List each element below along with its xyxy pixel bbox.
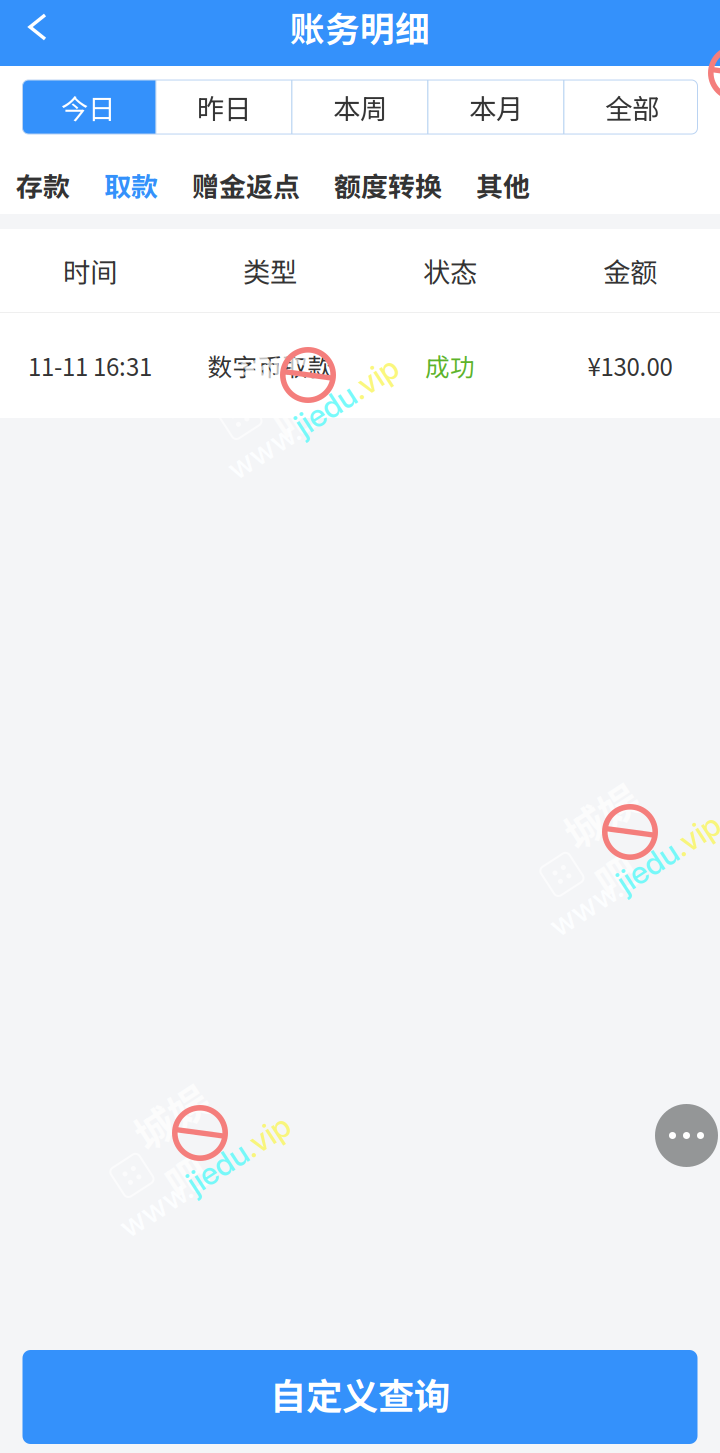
- staticText: 全部: [605, 87, 659, 127]
- staticText: .vip: [361, 399, 411, 436]
- staticText: 本月: [469, 87, 523, 127]
- staticText: 存款: [16, 165, 70, 204]
- staticText: 城娱吧: [150, 1094, 230, 1210]
- button[interactable]: 存款: [16, 148, 70, 214]
- button[interactable]: 本月: [428, 80, 563, 134]
- staticText: 账务明细: [290, 2, 430, 52]
- staticText: jiedu: [616, 856, 683, 893]
- button[interactable]: 其他: [476, 148, 530, 214]
- staticText: 本周: [333, 87, 387, 127]
- staticText: 其他: [476, 165, 530, 204]
- staticText: ¥130.00: [587, 348, 672, 383]
- button[interactable]: 额度转换: [334, 148, 442, 214]
- button[interactable]: 全部: [564, 80, 699, 134]
- staticText: 类型: [243, 251, 297, 290]
- button[interactable]: 取款: [104, 148, 158, 214]
- button[interactable]: 本周: [292, 80, 427, 134]
- staticText: jiedu: [186, 1157, 253, 1194]
- staticText: 赠金返点: [192, 165, 300, 204]
- staticText: 11-11 16:31: [28, 348, 152, 383]
- staticText: 数字币取款: [207, 348, 332, 383]
- button[interactable]: More: [655, 1104, 718, 1167]
- staticText: 取款: [104, 165, 158, 204]
- button[interactable]: 自定义查询: [22, 1350, 697, 1444]
- staticText: 额度转换: [334, 165, 442, 204]
- staticText: jiedu: [294, 399, 361, 436]
- staticText: 自定义查询: [270, 1368, 450, 1420]
- staticText: 金额: [603, 251, 657, 290]
- staticText: 今日: [61, 87, 115, 127]
- staticText: www.: [106, 1157, 186, 1194]
- staticText: www.: [214, 399, 294, 436]
- button[interactable]: 赠金返点: [192, 148, 300, 214]
- staticText: 时间: [63, 251, 117, 290]
- button[interactable]: 今日: [20, 80, 155, 134]
- staticText: 昨日: [197, 87, 251, 127]
- staticText: 城娱吧: [580, 793, 660, 909]
- staticText: 城娱吧: [258, 336, 338, 452]
- staticText: www.: [536, 856, 616, 893]
- staticText: 状态: [423, 251, 477, 290]
- button[interactable]: Back: [0, 0, 70, 66]
- button[interactable]: 昨日: [156, 80, 291, 134]
- staticText: 成功: [425, 348, 475, 383]
